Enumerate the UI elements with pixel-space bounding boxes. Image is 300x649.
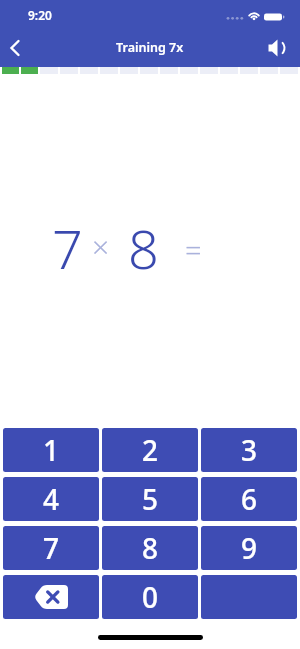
button[interactable] xyxy=(0,30,36,66)
staticText: 4 xyxy=(43,480,60,518)
staticText: 5 xyxy=(142,480,159,518)
button[interactable]: 9 xyxy=(201,526,297,570)
button[interactable]: 1 xyxy=(3,428,99,472)
staticText: 1 xyxy=(43,431,60,469)
staticText: 3 xyxy=(241,431,258,469)
button[interactable]: 4 xyxy=(3,477,99,521)
button[interactable]: 0 xyxy=(102,575,198,619)
button[interactable] xyxy=(3,575,99,619)
button[interactable]: 2 xyxy=(102,428,198,472)
button[interactable]: 5 xyxy=(102,477,198,521)
staticText: 0 xyxy=(142,578,159,616)
button[interactable] xyxy=(264,30,300,66)
button[interactable] xyxy=(201,575,297,619)
staticText: = xyxy=(185,230,202,269)
staticText: 9 xyxy=(241,529,258,567)
staticText: 7 xyxy=(43,529,60,567)
staticText: Training 7x xyxy=(116,39,184,56)
staticText: 8 xyxy=(142,529,159,567)
staticText: 6 xyxy=(241,480,258,518)
staticText: × xyxy=(92,226,110,267)
staticText: 2 xyxy=(142,431,159,469)
button[interactable]: 3 xyxy=(201,428,297,472)
staticText: 7 xyxy=(52,211,83,285)
button[interactable]: 8 xyxy=(102,526,198,570)
staticText: 9:20 xyxy=(28,7,52,23)
button[interactable]: 6 xyxy=(201,477,297,521)
button[interactable]: 7 xyxy=(3,526,99,570)
staticText: 8 xyxy=(128,211,159,285)
